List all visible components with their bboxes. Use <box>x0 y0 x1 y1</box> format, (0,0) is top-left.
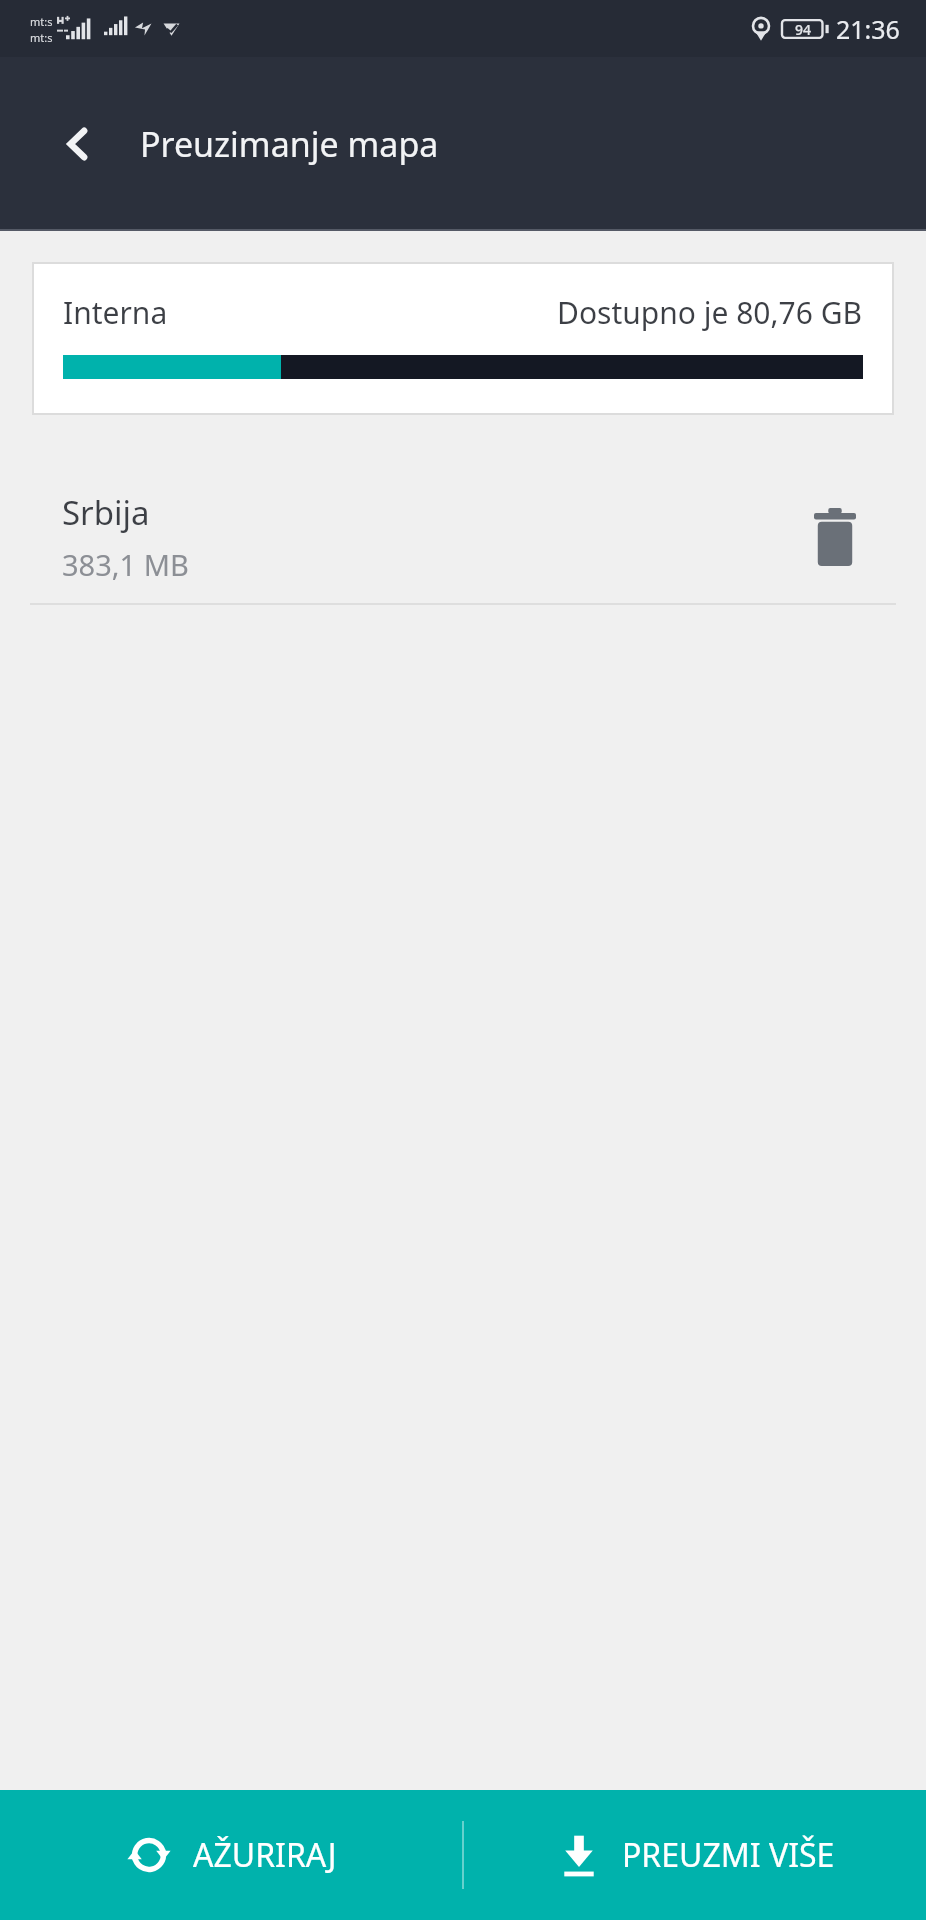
staticText: Interna <box>63 292 168 333</box>
staticText: mt:s <box>30 30 53 45</box>
button[interactable]: Delete <box>799 501 871 573</box>
staticText: Dostupno je 80,76 GB <box>557 292 863 333</box>
staticText: mt:s <box>30 14 53 29</box>
button[interactable]: PREUZMI VIŠE <box>464 1790 926 1920</box>
button[interactable]: Srbija <box>0 471 926 603</box>
button[interactable]: Interna <box>34 264 892 413</box>
staticText: Preuzimanje mapa <box>140 121 439 167</box>
staticText: 383,1 MB <box>62 545 189 584</box>
staticText: AŽURIRAJ <box>193 1833 337 1877</box>
button[interactable]: Back <box>30 96 126 192</box>
staticText: PREUZMI VIŠE <box>622 1833 835 1877</box>
staticText: 21:36 <box>836 12 900 46</box>
staticText: Srbija <box>62 490 150 535</box>
staticText: 94 <box>795 20 812 39</box>
button[interactable]: AŽURIRAJ <box>0 1790 462 1920</box>
